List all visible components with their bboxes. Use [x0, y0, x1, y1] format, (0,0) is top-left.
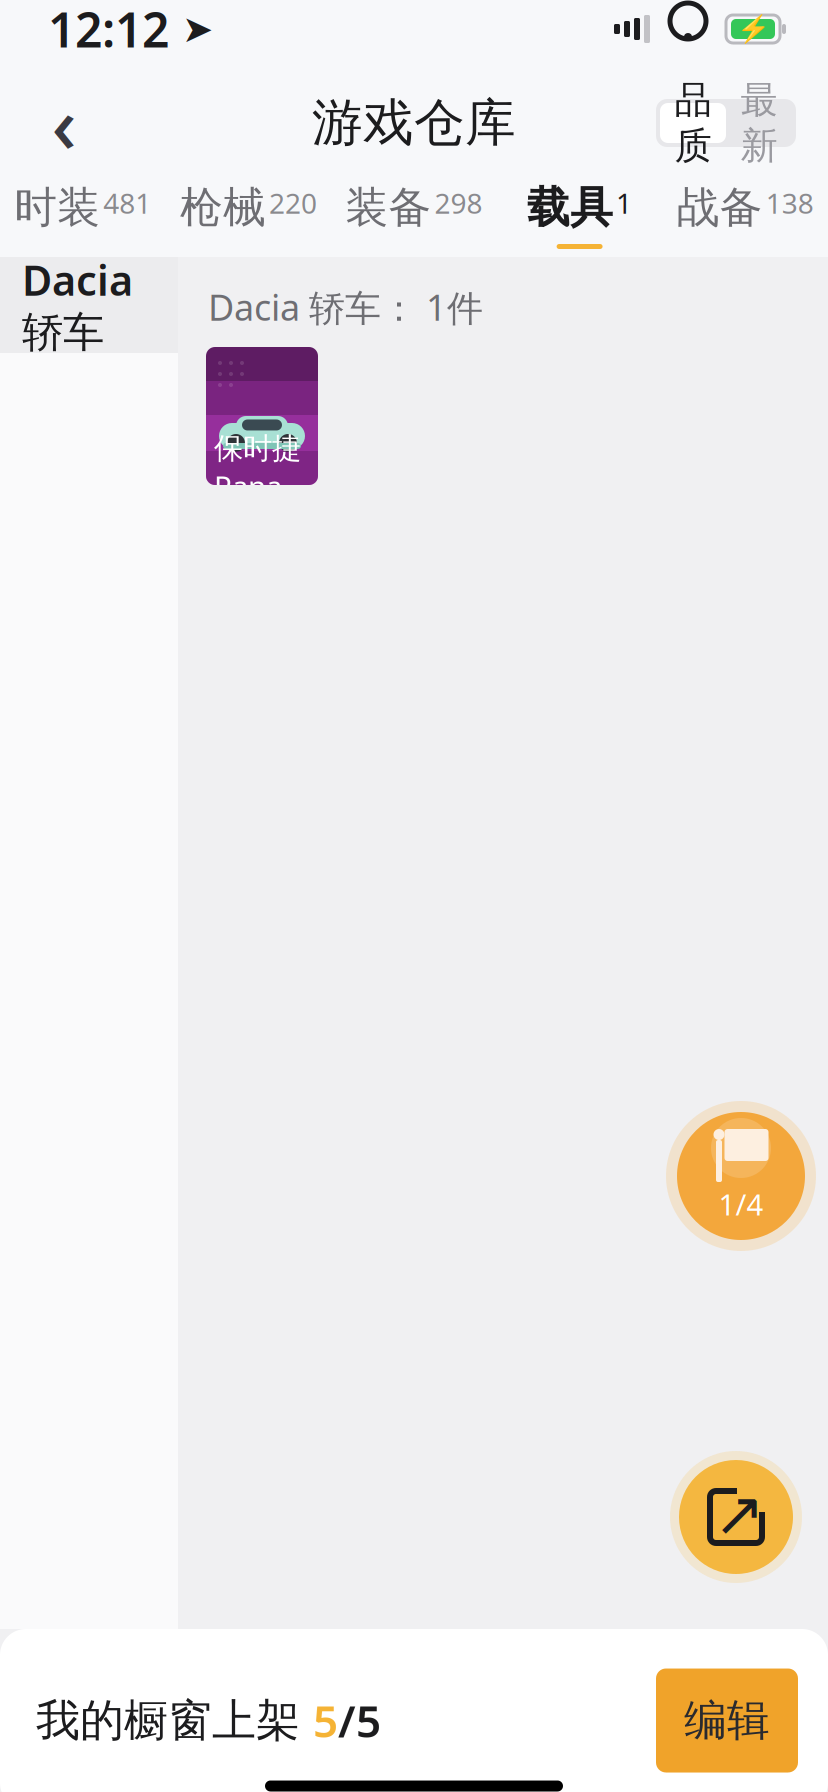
- button[interactable]: 最新: [726, 103, 792, 143]
- staticText: 装备: [345, 181, 431, 234]
- staticText: ‹: [51, 72, 76, 174]
- button[interactable]: 品质: [660, 103, 726, 143]
- staticText: ⚡: [736, 14, 769, 44]
- staticText: 1: [616, 184, 632, 222]
- button[interactable]: 时装: [0, 171, 166, 257]
- button[interactable]: 枪械: [166, 171, 331, 257]
- staticText: ➤: [169, 8, 213, 50]
- button[interactable]: 载具: [497, 171, 662, 257]
- staticText: ↗: [713, 1479, 764, 1549]
- button[interactable]: 编辑: [656, 1668, 798, 1772]
- staticText: 时装: [14, 181, 100, 234]
- staticText: 保时捷Pana...: [214, 430, 306, 505]
- staticText: 我的橱窗上架: [36, 1693, 313, 1747]
- staticText: 138: [766, 184, 814, 222]
- staticText: 481: [103, 184, 151, 222]
- button[interactable]: 返回: [22, 81, 106, 165]
- staticText: 298: [434, 184, 482, 222]
- staticText: 品质: [674, 77, 711, 169]
- staticText: 12:12: [48, 0, 169, 61]
- staticText: Dacia 轿车: [22, 252, 133, 358]
- button[interactable]: 分享: [670, 1451, 802, 1583]
- staticText: 220: [269, 184, 317, 222]
- button[interactable]: 保时捷Pana...: [206, 347, 318, 485]
- staticText: 最新: [740, 77, 777, 169]
- staticText: /5: [338, 1691, 381, 1750]
- staticText: 枪械: [180, 181, 266, 234]
- staticText: 战备: [677, 181, 763, 234]
- button[interactable]: 装备: [331, 171, 497, 257]
- staticText: 编辑: [684, 1694, 770, 1747]
- staticText: 5: [313, 1691, 338, 1750]
- button[interactable]: 战备: [662, 171, 828, 257]
- button[interactable]: Dacia 轿车: [0, 257, 178, 353]
- button[interactable]: 旗帜 1/4: [666, 1101, 816, 1251]
- staticText: 游戏仓库: [312, 92, 516, 154]
- staticText: 1/4: [718, 1184, 763, 1223]
- staticText: Dacia 轿车： 1件: [208, 283, 483, 331]
- staticText: 载具: [527, 181, 613, 234]
